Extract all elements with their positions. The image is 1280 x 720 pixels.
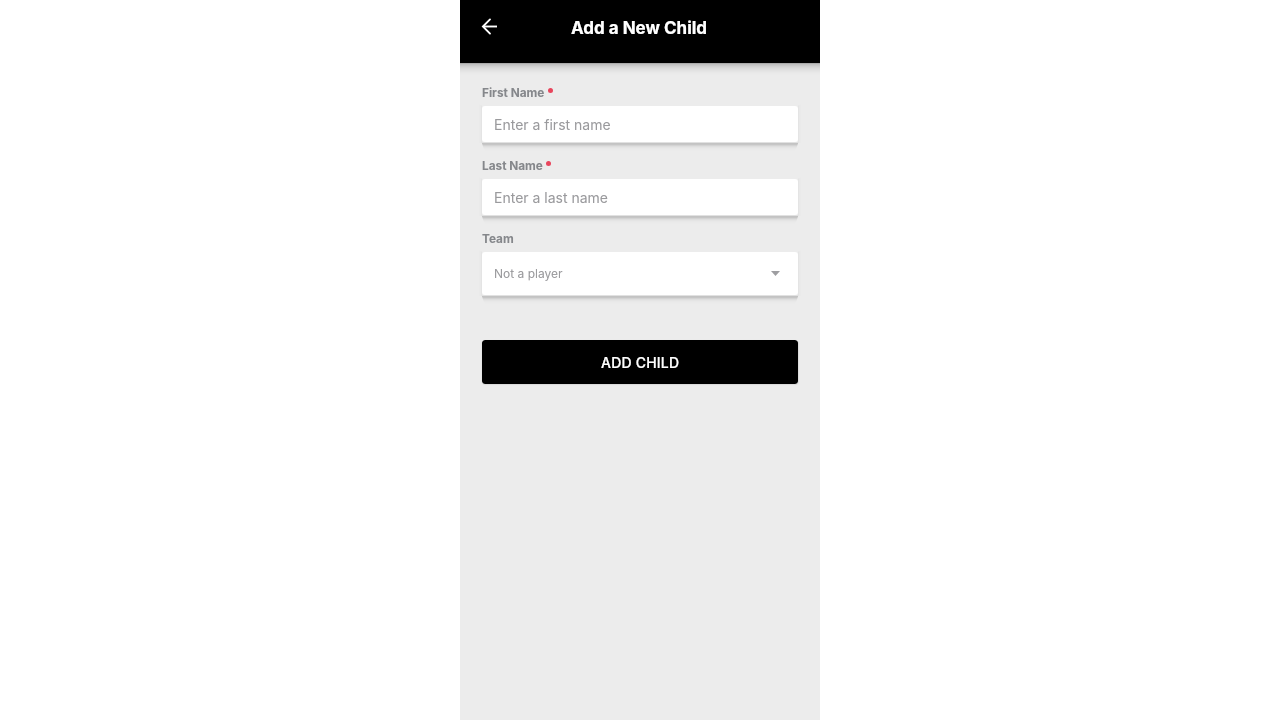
staticText: Add a New Child — [571, 18, 708, 39]
button[interactable]: Not a player — [482, 252, 798, 295]
button[interactable]: Back — [471, 8, 507, 44]
staticText: Last Name — [482, 159, 543, 173]
button[interactable]: Enter a first name — [482, 106, 798, 142]
button[interactable]: ADD CHILD — [482, 340, 798, 384]
staticText: ADD CHILD — [601, 354, 680, 371]
button[interactable]: Enter a last name — [482, 179, 798, 215]
staticText: First Name — [482, 86, 545, 100]
staticText: Not a player — [494, 266, 563, 281]
staticText: Enter a first name — [494, 116, 611, 133]
staticText: Team — [482, 232, 514, 246]
staticText: Enter a last name — [494, 189, 609, 206]
other: Open team list — [771, 271, 780, 276]
